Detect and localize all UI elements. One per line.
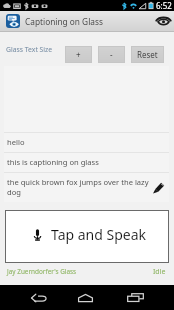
button[interactable]: Home <box>66 285 104 310</box>
staticText: Tap and Speak <box>51 225 147 244</box>
staticText: - <box>110 49 113 60</box>
staticText: + <box>76 49 81 60</box>
button[interactable]: hello <box>4 133 169 152</box>
staticText: the quick brown fox jumps over the lazy … <box>7 177 149 197</box>
button[interactable]: Recent apps <box>116 285 154 310</box>
button[interactable]: + <box>65 46 92 63</box>
staticText: Idle <box>153 267 166 277</box>
staticText: Jay Zuerndorfer's Glass <box>7 267 77 276</box>
button[interactable]: App icon <box>6 14 20 28</box>
button[interactable]: Edit <box>150 179 166 195</box>
button[interactable]: Tap and Speak <box>5 210 169 263</box>
staticText: 6:52 <box>156 0 172 11</box>
button[interactable]: this is captioning on glass <box>4 153 169 172</box>
staticText: this is captioning on glass <box>7 157 166 167</box>
button[interactable]: Preview on Glass <box>153 11 174 31</box>
button[interactable]: the quick brown fox jumps over the lazy … <box>4 173 169 202</box>
staticText: Captioning on Glass <box>25 16 103 27</box>
staticText: hello <box>7 137 166 147</box>
button[interactable]: Reset <box>131 46 164 63</box>
button[interactable]: - <box>98 46 125 63</box>
button[interactable]: Back <box>20 285 58 310</box>
staticText: Glass Text Size <box>6 45 53 54</box>
staticText: Reset <box>137 49 158 60</box>
